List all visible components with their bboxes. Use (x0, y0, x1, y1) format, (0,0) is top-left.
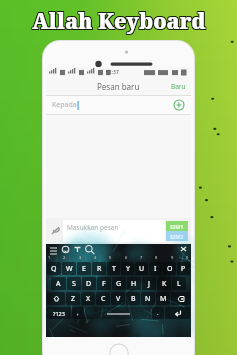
button[interactable]: Q (47, 262, 61, 275)
button[interactable]: T (107, 262, 120, 275)
button[interactable]: C (96, 292, 110, 305)
button[interactable]: G (112, 277, 126, 290)
staticText: T (112, 264, 116, 274)
staticText: 5 (109, 255, 112, 260)
button[interactable]: More (179, 245, 188, 254)
button[interactable]: W (62, 262, 76, 275)
button[interactable]: Menu (49, 245, 58, 254)
button[interactable]: H (127, 277, 141, 290)
button[interactable]: Home (109, 343, 129, 355)
staticText: Masukkan pesan (67, 223, 119, 232)
button[interactable]: E (77, 262, 91, 275)
staticText: SIM1 (170, 223, 184, 230)
button[interactable]: Space (85, 307, 151, 319)
staticText: O (167, 264, 173, 274)
staticText: B (131, 294, 136, 304)
button[interactable]: N (141, 292, 155, 305)
staticText: 1 (48, 255, 51, 260)
button[interactable]: Backspace (171, 292, 190, 305)
button[interactable]: Emoji (61, 245, 70, 254)
staticText: Allah Keyboard (31, 8, 205, 37)
staticText: ?123 (53, 310, 65, 317)
staticText: Pesan baru (97, 81, 140, 92)
staticText: C (101, 294, 106, 304)
staticText: 2 (63, 255, 66, 260)
staticText: E (82, 264, 86, 274)
staticText: 3 (79, 255, 82, 260)
button[interactable]: Masukkan pesan (63, 220, 165, 242)
staticText: L (177, 279, 181, 289)
button[interactable]: M (156, 292, 170, 305)
button[interactable]: Shift (47, 292, 65, 305)
button[interactable]: O (163, 262, 176, 275)
button[interactable]: F (97, 277, 111, 290)
button[interactable]: , (72, 307, 84, 319)
button[interactable]: Z (66, 292, 80, 305)
staticText: Allah Keyboard (31, 7, 205, 36)
staticText: J (148, 279, 150, 289)
button[interactable]: K (157, 277, 171, 290)
staticText: SIM2 (170, 233, 184, 240)
staticText: Allah Keyboard (33, 8, 207, 37)
button[interactable]: SIM2 (166, 231, 188, 241)
staticText: Allah Keyboard (31, 6, 205, 35)
staticText: 0 (186, 255, 189, 260)
button[interactable]: Attach (49, 225, 61, 237)
button[interactable]: V (111, 292, 125, 305)
button[interactable]: X (81, 292, 95, 305)
staticText: U (139, 264, 145, 274)
button[interactable]: U (135, 262, 148, 275)
staticText: P (181, 264, 186, 274)
button[interactable]: ?123 (47, 307, 71, 319)
staticText: Baru (171, 82, 186, 91)
staticText: A (56, 279, 61, 289)
staticText: Allah Keyboard (32, 8, 206, 37)
staticText: X (86, 294, 91, 304)
staticText: K (162, 279, 167, 289)
button[interactable]: Baru (166, 82, 191, 91)
staticText: 7 (140, 255, 143, 260)
button[interactable]: Text (73, 245, 82, 254)
staticText: H (131, 279, 137, 289)
button[interactable]: D (82, 277, 96, 290)
staticText: Q (51, 264, 57, 274)
staticText: 8 (155, 255, 158, 260)
button[interactable]: Search (85, 245, 94, 254)
staticText: N (145, 294, 151, 304)
button[interactable]: B (126, 292, 140, 305)
button[interactable]: Enter (165, 307, 190, 319)
staticText: S (72, 279, 76, 289)
staticText: F (102, 279, 106, 289)
staticText: I (154, 264, 157, 274)
staticText: Allah Keyboard (33, 7, 207, 36)
staticText: W (66, 264, 73, 274)
staticText: Allah Keyboard (33, 6, 207, 35)
staticText: 4 (94, 255, 97, 260)
staticText: 6 (125, 255, 128, 260)
staticText: Kepada (52, 100, 77, 110)
staticText: Allah Keyboard (32, 7, 206, 36)
staticText: 9 (171, 255, 174, 260)
staticText: Z (71, 294, 76, 304)
staticText: D (86, 279, 92, 289)
staticText: V (116, 294, 121, 304)
staticText: Y (126, 264, 130, 274)
staticText: R (97, 264, 102, 274)
button[interactable]: I (149, 262, 162, 275)
button[interactable]: P (177, 262, 190, 275)
button[interactable]: R (92, 262, 106, 275)
staticText: . (157, 309, 159, 317)
staticText: 12:37 (106, 69, 119, 76)
button[interactable]: SIM1 (166, 221, 188, 231)
button[interactable]: Add recipient (173, 99, 185, 111)
staticText: Allah Keyboard (32, 6, 206, 35)
button[interactable]: L (172, 277, 186, 290)
button[interactable]: A (51, 277, 66, 290)
staticText: , (77, 309, 79, 317)
button[interactable]: J (142, 277, 156, 290)
button[interactable]: Y (121, 262, 134, 275)
button[interactable]: Kepada (46, 95, 191, 115)
staticText: M (160, 294, 167, 304)
button[interactable]: . (152, 307, 164, 319)
button[interactable]: S (67, 277, 81, 290)
